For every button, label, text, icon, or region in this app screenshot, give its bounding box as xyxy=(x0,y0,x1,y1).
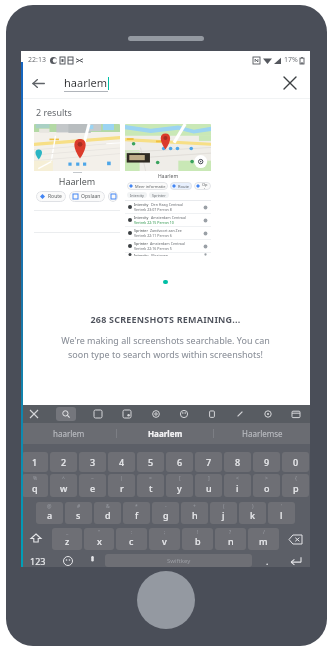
staticText: k xyxy=(250,509,256,521)
button[interactable]: Intercity xyxy=(125,253,211,256)
button[interactable]: Location xyxy=(261,407,275,421)
button[interactable]: Theme xyxy=(233,407,247,421)
staticText: | xyxy=(120,475,123,482)
staticText: = xyxy=(149,475,152,482)
staticText: w xyxy=(60,482,68,494)
button[interactable]: haarlem xyxy=(21,424,116,443)
staticText: v xyxy=(162,535,167,547)
button[interactable]: ~ xyxy=(79,474,106,497)
staticText: Zandvoort aan Zee xyxy=(150,228,182,233)
button[interactable]: Opslaan xyxy=(73,191,101,202)
button[interactable]: [ xyxy=(166,474,193,497)
button[interactable]: Settings xyxy=(149,407,163,421)
button[interactable]: 3 xyxy=(79,452,106,472)
button[interactable]: _ xyxy=(52,528,82,550)
button[interactable]: Sprinter xyxy=(125,227,211,240)
staticText: Den Haag Centraal xyxy=(151,202,183,207)
staticText: q xyxy=(32,482,38,494)
staticText: # xyxy=(77,503,81,510)
button[interactable]: - xyxy=(152,502,179,524)
button[interactable]: . xyxy=(254,554,280,567)
staticText: { xyxy=(295,475,297,482)
button[interactable]: { xyxy=(282,474,309,497)
button[interactable]: 1 xyxy=(22,452,48,472)
button[interactable]: ; xyxy=(149,528,180,550)
staticText: Sprinter xyxy=(152,193,166,198)
button[interactable]: Opslaan xyxy=(196,182,209,190)
button[interactable]: + xyxy=(181,502,208,524)
staticText: y xyxy=(177,482,182,494)
staticText: > xyxy=(265,475,268,482)
button[interactable]: Emoji xyxy=(55,554,81,567)
button[interactable]: " xyxy=(84,528,114,550)
staticText: Opslaan xyxy=(81,193,101,200)
button[interactable]: Voice xyxy=(81,554,103,567)
button[interactable]: ! xyxy=(182,528,213,550)
button[interactable]: * xyxy=(123,502,150,524)
button[interactable]: 7 xyxy=(195,452,222,472)
button[interactable]: 8 xyxy=(224,452,251,472)
button[interactable]: Haarlem xyxy=(34,124,120,252)
button[interactable]: ^ xyxy=(50,474,77,497)
button[interactable]: GIF xyxy=(91,407,105,421)
button[interactable]: Stickers xyxy=(120,407,134,421)
button[interactable]: 123 xyxy=(21,554,55,567)
button[interactable]: & xyxy=(94,502,121,524)
button[interactable]: ( xyxy=(210,502,237,524)
button[interactable]: @ xyxy=(36,502,63,524)
staticText: 0 xyxy=(293,456,299,468)
button[interactable]: 4 xyxy=(108,452,135,472)
button[interactable]: ) xyxy=(239,502,266,524)
button[interactable]: : xyxy=(116,528,147,550)
staticText: 123 xyxy=(30,555,46,567)
staticText: & xyxy=(106,503,110,510)
button[interactable]: Calendar xyxy=(289,407,303,421)
staticText: Sprinter xyxy=(134,241,148,246)
staticText: o xyxy=(264,482,270,494)
button[interactable]: Haarlem xyxy=(117,424,213,443)
staticText: ; xyxy=(164,529,166,536)
button[interactable]: Swiftkey xyxy=(105,554,252,567)
button[interactable]: < xyxy=(224,474,251,497)
button[interactable]: Clipboard xyxy=(205,407,219,421)
button[interactable]: Backspace xyxy=(280,528,310,550)
staticText: haarlem xyxy=(64,75,108,90)
button[interactable]: Clear search xyxy=(273,68,307,98)
button[interactable]: ' xyxy=(268,502,295,524)
button[interactable]: Enter xyxy=(280,554,310,567)
staticText: a xyxy=(47,509,53,521)
button[interactable]: = xyxy=(137,474,164,497)
button[interactable]: # xyxy=(65,502,92,524)
button[interactable]: 5 xyxy=(137,452,164,472)
button[interactable]: ] xyxy=(195,474,222,497)
button[interactable]: Haarlemse xyxy=(214,424,310,443)
button[interactable]: > xyxy=(253,474,280,497)
button[interactable]: Meer informatie xyxy=(129,182,166,190)
staticText: 9 xyxy=(264,456,270,468)
staticText: : xyxy=(131,529,133,536)
button[interactable]: Route xyxy=(40,191,62,202)
button[interactable]: Shift xyxy=(21,528,51,550)
button[interactable]: Sprinter xyxy=(125,240,211,253)
staticText: + xyxy=(193,503,196,510)
button[interactable]: Emoji xyxy=(177,407,191,421)
staticText: * xyxy=(135,503,138,510)
button[interactable]: Haarlem xyxy=(125,124,211,256)
button[interactable]: 0 xyxy=(282,452,309,472)
button[interactable]: / xyxy=(248,528,279,550)
button[interactable]: % xyxy=(22,474,48,497)
staticText: Opslaan xyxy=(202,182,209,190)
button[interactable]: ? xyxy=(215,528,246,550)
button[interactable]: | xyxy=(108,474,135,497)
staticText: Intercity xyxy=(134,215,149,220)
button[interactable]: Close xyxy=(27,407,41,421)
button[interactable]: 9 xyxy=(253,452,280,472)
staticText: _ xyxy=(66,529,69,536)
button[interactable]: Intercity xyxy=(125,214,211,227)
button[interactable]: Back xyxy=(21,68,55,98)
button[interactable]: 2 xyxy=(50,452,77,472)
button[interactable]: 6 xyxy=(166,452,193,472)
button[interactable]: Route xyxy=(172,182,190,190)
button[interactable]: Search xyxy=(56,407,76,421)
button[interactable]: Intercity xyxy=(125,201,211,214)
